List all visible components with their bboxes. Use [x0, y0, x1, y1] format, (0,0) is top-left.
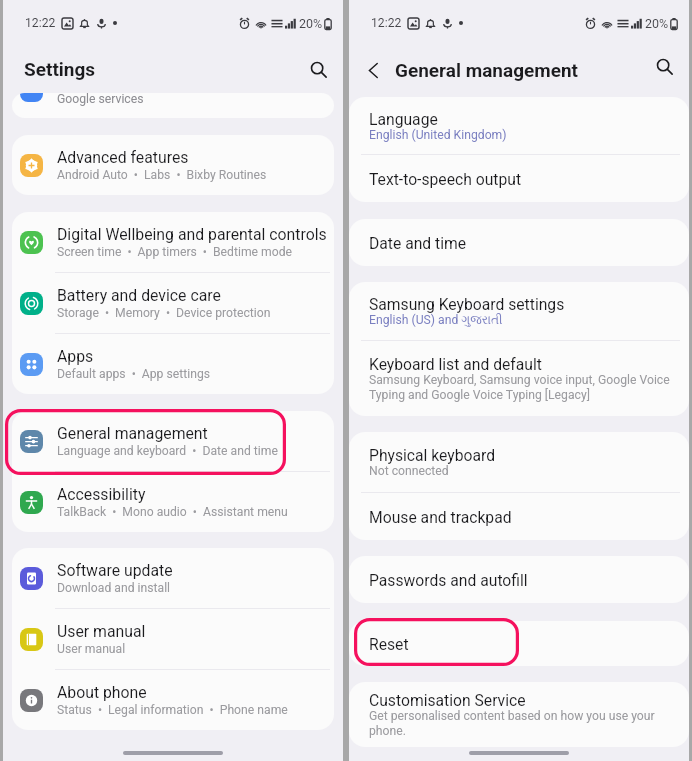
button[interactable]: Language [349, 97, 689, 154]
button[interactable]: Advanced features [12, 135, 334, 195]
button[interactable]: Search [303, 54, 333, 84]
staticText: Screen time • App timers • Bedtime mode [57, 245, 293, 259]
button[interactable]: Customisation Service [349, 682, 689, 747]
button[interactable]: Software update [12, 548, 334, 608]
staticText: About phone [57, 683, 147, 702]
staticText: Battery and device care [57, 286, 221, 305]
staticText: Mouse and trackpad [369, 508, 512, 526]
button[interactable]: Date and time [349, 219, 689, 266]
button[interactable]: About phone [12, 670, 334, 730]
staticText: 12:22 [371, 16, 402, 30]
button[interactable]: Passwords and autofill [349, 556, 689, 603]
staticText: Google services [57, 93, 144, 106]
staticText: Software update [57, 561, 173, 580]
staticText: Get personalised content based on how yo… [369, 709, 675, 738]
staticText: TalkBack • Mono audio • Assistant menu [57, 505, 288, 519]
button[interactable]: Search [649, 51, 679, 81]
staticText: General management [57, 424, 208, 443]
button[interactable]: Battery and device care [12, 273, 334, 333]
staticText: Samsung Keyboard, Samsung voice input, G… [369, 373, 675, 402]
staticText: English (US) and ગુજરાતી [369, 313, 503, 327]
button[interactable]: Samsung Keyboard settings [349, 282, 689, 340]
button[interactable]: Reset [349, 621, 689, 666]
staticText: Accessibility [57, 485, 146, 504]
button[interactable]: Keyboard list and default [349, 341, 689, 416]
staticText: Default apps • App settings [57, 367, 211, 381]
staticText: Language [369, 110, 438, 128]
staticText: Language and keyboard • Date and time [57, 444, 278, 458]
button[interactable]: Text-to-speech output [349, 155, 689, 202]
staticText: Apps [57, 347, 94, 366]
staticText: Android Auto • Labs • Bixby Routines [57, 168, 267, 182]
staticText: Keyboard list and default [369, 355, 542, 373]
staticText: English (United Kingdom) [369, 128, 507, 142]
staticText: User manual [57, 622, 146, 641]
staticText: Physical keyboard [369, 446, 496, 464]
button[interactable]: Physical keyboard [349, 432, 689, 492]
staticText: Reset [369, 635, 409, 653]
staticText: Date and time [369, 234, 467, 252]
staticText: Digital Wellbeing and parental controls [57, 225, 327, 244]
staticText: Not connected [369, 464, 449, 478]
staticText: Customisation Service [369, 691, 526, 709]
button[interactable]: Apps [12, 334, 334, 394]
button[interactable]: Google services [12, 93, 334, 118]
staticText: General management [395, 59, 579, 81]
staticText: Status • Legal information • Phone name [57, 703, 288, 717]
staticText: 12:22 [25, 16, 56, 30]
staticText: Advanced features [57, 148, 189, 167]
staticText: Download and install [57, 581, 171, 595]
staticText: Settings [24, 58, 96, 80]
staticText: Passwords and autofill [369, 571, 528, 589]
button[interactable]: Accessibility [12, 472, 334, 532]
staticText: Samsung Keyboard settings [369, 295, 565, 313]
staticText: User manual [57, 642, 126, 656]
button[interactable]: User manual [12, 609, 334, 669]
button[interactable]: Mouse and trackpad [349, 493, 689, 540]
staticText: 20% [299, 16, 323, 31]
staticText: 20% [645, 16, 669, 31]
button[interactable]: Digital Wellbeing and parental controls [12, 212, 334, 272]
staticText: Storage • Memory • Device protection [57, 306, 271, 320]
button[interactable]: Back [359, 56, 387, 84]
staticText: Text-to-speech output [369, 170, 522, 188]
button[interactable]: General management [12, 411, 334, 471]
